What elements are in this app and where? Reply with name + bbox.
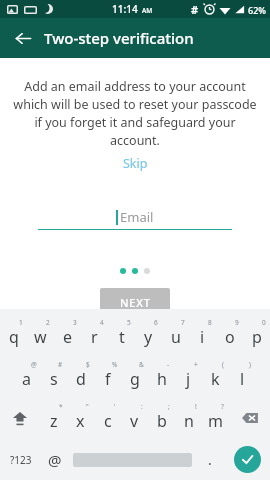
button[interactable]: - [148, 355, 175, 397]
staticText: w [34, 326, 47, 348]
staticText: r [91, 326, 98, 348]
staticText: 9 [235, 318, 239, 327]
button[interactable]: Shift [0, 397, 40, 439]
button[interactable]: 4 [81, 313, 108, 355]
staticText: q [9, 326, 19, 348]
button[interactable]: " [67, 397, 94, 439]
button[interactable]: ( [202, 355, 229, 397]
staticText: g [130, 368, 140, 390]
staticText: i [200, 326, 205, 348]
button[interactable]: @ [13, 355, 40, 397]
button[interactable]: ! [175, 397, 202, 439]
staticText: ! [195, 402, 197, 411]
button[interactable]: 3 [54, 313, 81, 355]
staticText: e [63, 326, 73, 348]
staticText: Email [120, 208, 154, 226]
button[interactable]: Skip [113, 153, 158, 174]
staticText: @ [48, 450, 62, 470]
staticText: 3 [73, 318, 77, 327]
button[interactable]: 9 [216, 313, 243, 355]
staticText: ? [221, 402, 224, 411]
button[interactable]: ? [202, 397, 229, 439]
staticText: + [194, 360, 198, 369]
staticText: m [208, 410, 223, 432]
button[interactable]: Backspace [229, 397, 270, 439]
button[interactable]: 5 [108, 313, 135, 355]
staticText: s [50, 368, 58, 390]
staticText: f [105, 368, 111, 390]
button[interactable]: NEXT [100, 288, 170, 316]
staticText: # [58, 360, 63, 369]
button[interactable]: Space [69, 439, 196, 480]
staticText: 7 [181, 318, 185, 327]
staticText: 2 [46, 318, 50, 327]
staticText: b [157, 410, 167, 432]
staticText: 1 [19, 318, 23, 327]
button[interactable]: + [175, 355, 202, 397]
button[interactable]: $ [67, 355, 94, 397]
staticText: 0 [262, 318, 266, 327]
staticText: AM [142, 6, 153, 15]
staticText: h [157, 368, 167, 390]
button[interactable]: @ [41, 439, 69, 480]
button[interactable]: * [40, 397, 67, 439]
staticText: 4 [100, 318, 104, 327]
staticText: x [76, 410, 85, 432]
staticText: ?123 [10, 453, 32, 467]
staticText: n [184, 410, 194, 432]
staticText: y [144, 326, 153, 348]
staticText: . [208, 450, 212, 469]
button[interactable]: ' [94, 397, 121, 439]
staticText: Skip [123, 155, 148, 172]
staticText: NEXT [120, 295, 151, 310]
button[interactable]: 7 [162, 313, 189, 355]
staticText: " [86, 402, 89, 411]
button[interactable]: : [121, 397, 148, 439]
button[interactable]: % [94, 355, 121, 397]
staticText: l [240, 368, 245, 390]
staticText: & [139, 360, 144, 369]
staticText: p [252, 326, 262, 348]
button[interactable]: & [121, 355, 148, 397]
button[interactable]: Back [8, 23, 38, 53]
staticText: o [225, 326, 235, 348]
staticText: ; [168, 402, 170, 411]
staticText: 6 [154, 318, 158, 327]
staticText: Add an email address to your account whi… [12, 78, 258, 149]
staticText: j [186, 368, 191, 390]
button[interactable]: ) [229, 355, 256, 397]
staticText: * [59, 402, 63, 411]
staticText: $ [86, 360, 90, 369]
staticText: a [22, 368, 31, 390]
button[interactable]: 0 [243, 313, 270, 355]
button[interactable]: 1 [0, 313, 27, 355]
staticText: d [76, 368, 86, 390]
staticText: @ [31, 360, 37, 369]
staticText: % [112, 360, 118, 369]
staticText: v [130, 410, 139, 432]
staticText: # [191, 2, 199, 17]
staticText: u [171, 326, 181, 348]
button[interactable]: ?123 [0, 439, 41, 480]
staticText: c [104, 410, 112, 432]
staticText: k [211, 368, 220, 390]
staticText: 5 [127, 318, 131, 327]
button[interactable]: . [196, 439, 224, 480]
button[interactable]: 8 [189, 313, 216, 355]
staticText: ) [249, 360, 251, 369]
button[interactable]: # [40, 355, 67, 397]
button[interactable]: ; [148, 397, 175, 439]
staticText: 11:14 [112, 2, 138, 16]
button[interactable]: Email [38, 204, 232, 230]
staticText: 8 [208, 318, 212, 327]
staticText: ( [222, 360, 224, 369]
staticText: t [119, 326, 125, 348]
staticText: ' [114, 402, 116, 411]
staticText: Two-step verification [44, 28, 194, 48]
staticText: 62% [248, 4, 266, 16]
button[interactable]: 6 [135, 313, 162, 355]
button[interactable]: Enter [224, 439, 270, 480]
staticText: : [141, 402, 143, 411]
button[interactable]: 2 [27, 313, 54, 355]
staticText: - [167, 360, 170, 369]
